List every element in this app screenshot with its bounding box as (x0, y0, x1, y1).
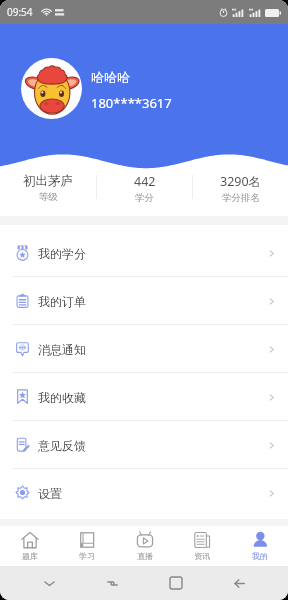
button[interactable]: Recents (162, 569, 190, 597)
staticText: 我的 (252, 551, 268, 561)
staticText: 我的学分 (38, 246, 86, 261)
button[interactable]: 我的订单 (0, 277, 288, 325)
button[interactable]: 我的学分 (0, 229, 288, 277)
staticText: 等级 (39, 191, 58, 203)
staticText: 题库 (22, 551, 38, 561)
button[interactable]: 意见反馈 (0, 421, 288, 469)
staticText: 直播 (137, 551, 153, 561)
staticText: 09:54 (7, 5, 33, 19)
staticText: 我的收藏 (38, 390, 86, 405)
button[interactable]: Avatar (21, 58, 82, 119)
button[interactable]: Switch (98, 569, 126, 597)
button[interactable]: 题库 (1, 526, 58, 566)
button[interactable]: 我的收藏 (0, 373, 288, 421)
staticText: 442 (134, 173, 156, 190)
staticText: 学分排名 (222, 192, 260, 203)
button[interactable]: 我的 (231, 526, 288, 566)
button[interactable]: 设置 (0, 469, 288, 517)
staticText: 学分 (135, 192, 154, 203)
button[interactable]: 学习 (58, 526, 115, 566)
button[interactable]: 资讯 (173, 526, 230, 566)
staticText: 设置 (38, 486, 62, 501)
staticText: 学习 (79, 551, 95, 561)
button[interactable]: 消息通知 (0, 325, 288, 373)
staticText: 意见反馈 (38, 438, 86, 453)
button[interactable]: 直播 (116, 526, 173, 566)
button[interactable]: Hide (35, 569, 63, 597)
button[interactable]: 初出茅庐 (0, 173, 96, 203)
staticText: 我的订单 (38, 294, 86, 309)
staticText: 资讯 (194, 551, 210, 561)
staticText: 消息通知 (38, 342, 86, 357)
button[interactable]: Back (225, 569, 253, 597)
staticText: 哈哈哈 (91, 69, 130, 85)
staticText: 初出茅庐 (23, 173, 73, 189)
staticText: 3290名 (220, 173, 262, 190)
button[interactable]: 3290名 (193, 173, 288, 203)
staticText: 180****3617 (91, 94, 172, 112)
button[interactable]: 442 (97, 173, 192, 203)
